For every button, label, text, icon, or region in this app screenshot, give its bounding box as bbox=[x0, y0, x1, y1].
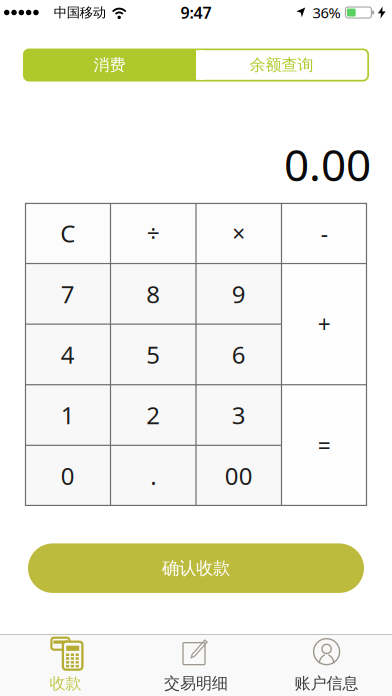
button[interactable]: 账户信息 bbox=[261, 635, 392, 696]
staticText: - bbox=[321, 218, 328, 248]
button[interactable]: × bbox=[196, 203, 281, 263]
staticText: 5 bbox=[146, 338, 160, 370]
staticText: 6 bbox=[232, 338, 246, 370]
button[interactable]: 余额查询 bbox=[196, 48, 369, 81]
button[interactable]: - bbox=[281, 203, 367, 263]
button[interactable]: 交易明细 bbox=[131, 635, 261, 696]
button[interactable]: . bbox=[110, 445, 196, 506]
button[interactable]: 消费 bbox=[23, 48, 196, 81]
button[interactable]: C bbox=[25, 203, 110, 263]
staticText: 确认收款 bbox=[162, 557, 230, 579]
button[interactable]: 1 bbox=[25, 385, 110, 445]
staticText: 4 bbox=[61, 338, 75, 370]
staticText: 9:47 bbox=[180, 2, 211, 23]
staticText: 3 bbox=[232, 399, 246, 431]
staticText: 余额查询 bbox=[249, 55, 313, 75]
button[interactable]: 确认收款 bbox=[28, 543, 364, 593]
button[interactable]: + bbox=[281, 263, 367, 385]
staticText: 9 bbox=[232, 278, 246, 310]
staticText: 账户信息 bbox=[295, 674, 359, 693]
button[interactable]: 6 bbox=[196, 324, 281, 385]
button[interactable]: = bbox=[281, 385, 367, 506]
staticText: 0.00 bbox=[284, 135, 371, 193]
button[interactable]: 4 bbox=[25, 324, 110, 385]
button[interactable]: 9 bbox=[196, 263, 281, 324]
staticText: 收款 bbox=[49, 674, 81, 693]
staticText: 消费 bbox=[93, 55, 125, 75]
staticText: ÷ bbox=[147, 218, 160, 248]
button[interactable]: 3 bbox=[196, 385, 281, 445]
staticText: 0 bbox=[61, 460, 75, 492]
button[interactable]: 5 bbox=[110, 324, 196, 385]
staticText: 2 bbox=[146, 399, 160, 431]
staticText: × bbox=[232, 218, 245, 248]
staticText: 7 bbox=[61, 278, 75, 310]
button[interactable]: ÷ bbox=[110, 203, 196, 263]
staticText: 中国移动 bbox=[54, 4, 106, 21]
staticText: + bbox=[318, 309, 331, 339]
button[interactable]: 2 bbox=[110, 385, 196, 445]
button[interactable]: 收款 bbox=[0, 635, 131, 696]
staticText: 00 bbox=[225, 460, 253, 492]
button[interactable]: 7 bbox=[25, 263, 110, 324]
staticText: C bbox=[60, 217, 75, 249]
staticText: = bbox=[318, 430, 331, 460]
staticText: 交易明细 bbox=[164, 674, 228, 693]
button[interactable]: 00 bbox=[196, 445, 281, 506]
staticText: 36% bbox=[312, 3, 340, 22]
staticText: 8 bbox=[146, 278, 160, 310]
staticText: . bbox=[150, 460, 156, 492]
button[interactable]: 0 bbox=[25, 445, 110, 506]
staticText: 1 bbox=[61, 399, 75, 431]
button[interactable]: 8 bbox=[110, 263, 196, 324]
